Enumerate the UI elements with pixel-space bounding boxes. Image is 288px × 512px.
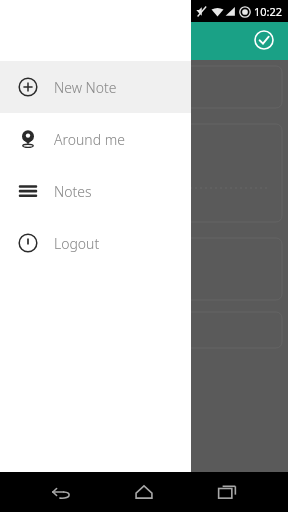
staticText: New Note: [54, 78, 117, 97]
button[interactable]: Notes: [0, 165, 191, 217]
button[interactable]: Save note: [246, 22, 282, 58]
staticText: Around me: [54, 130, 125, 149]
staticText: 10:22: [254, 4, 283, 19]
button[interactable]: Around me: [0, 113, 191, 165]
staticText: Notes: [54, 182, 92, 201]
button[interactable]: New Note: [0, 61, 191, 113]
staticText: Logout: [54, 234, 100, 253]
button[interactable]: Back: [39, 472, 83, 512]
button[interactable]: Home: [122, 472, 166, 512]
button[interactable]: Recents: [205, 472, 249, 512]
button[interactable]: Logout: [0, 217, 191, 269]
